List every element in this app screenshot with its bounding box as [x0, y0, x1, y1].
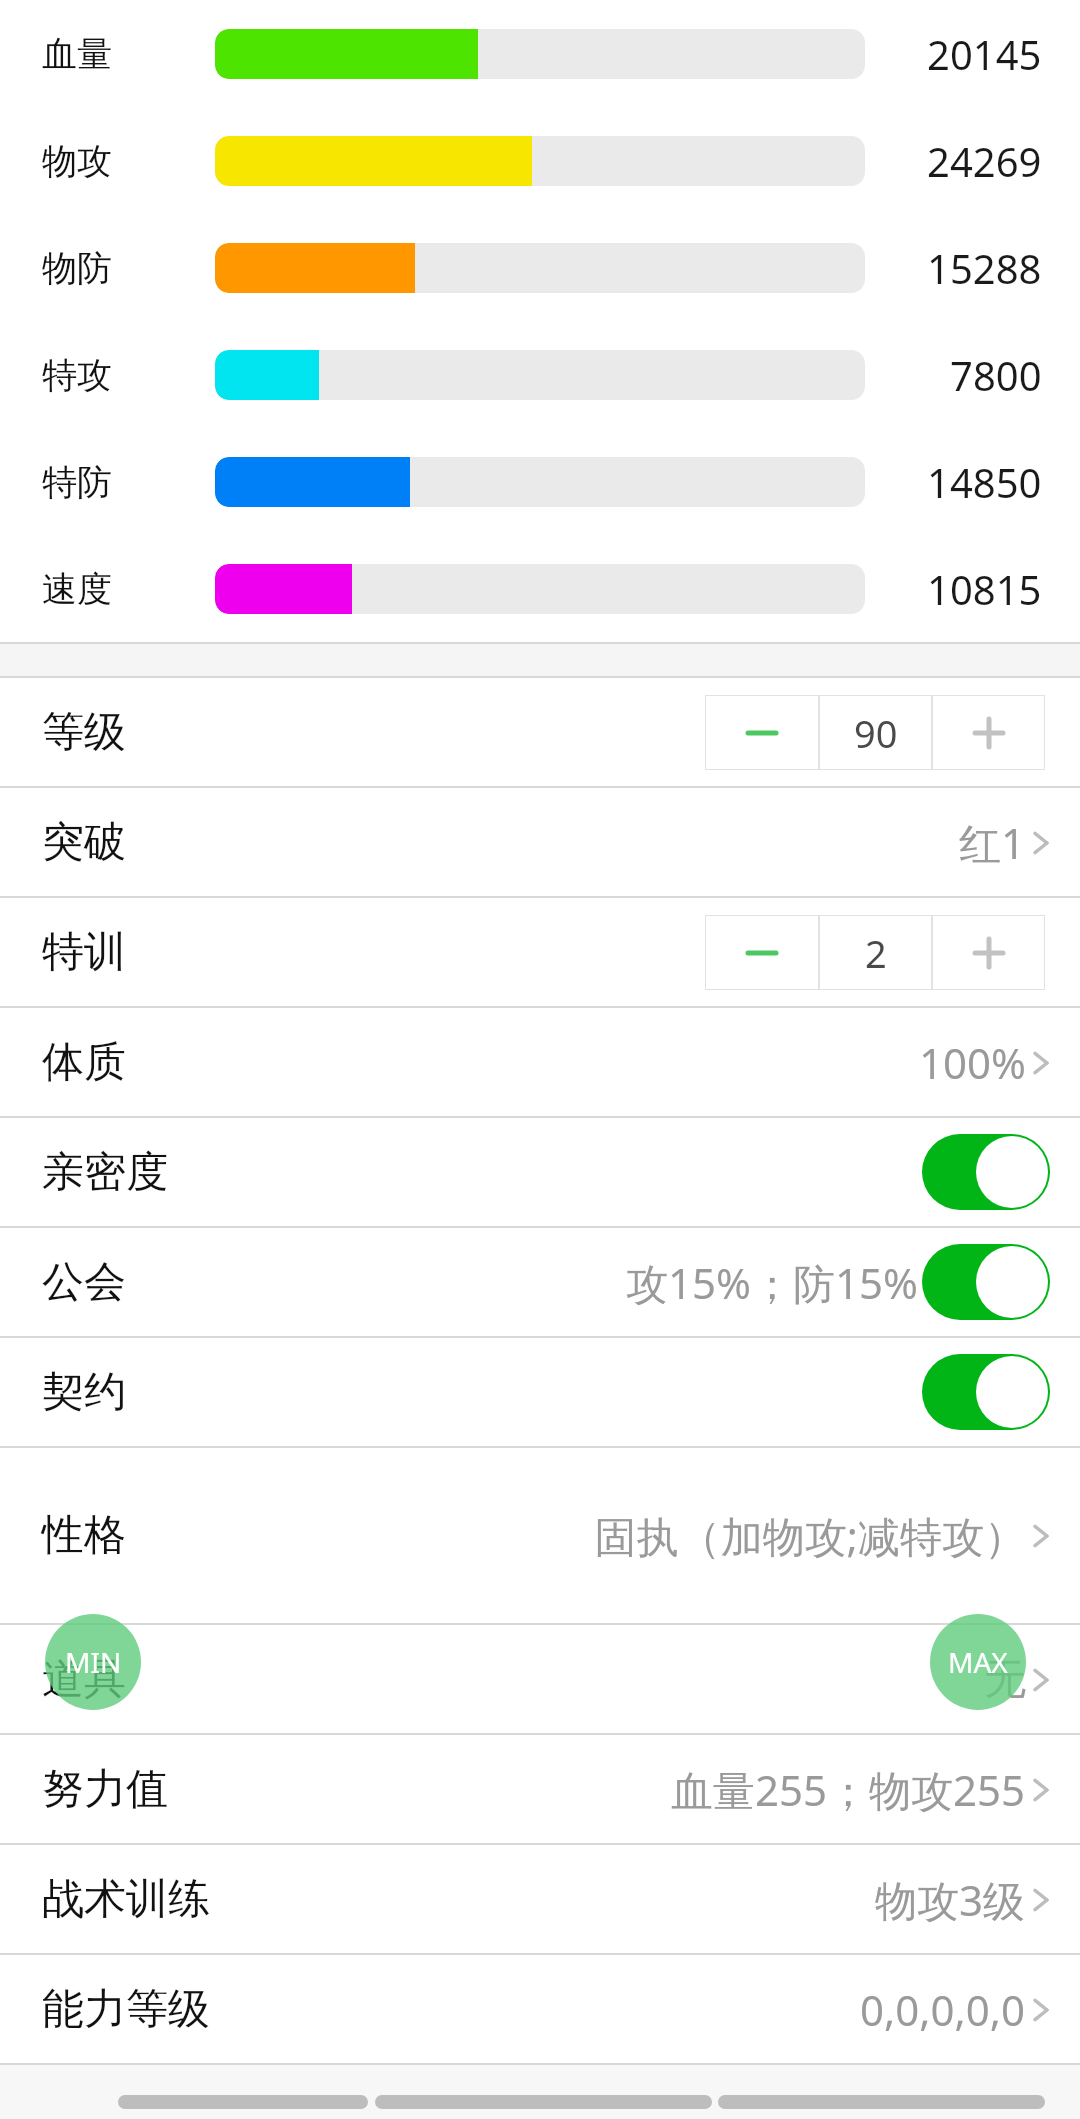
other: Increase	[969, 713, 1009, 753]
staticText: 无	[984, 1653, 1026, 1706]
button[interactable]: 等级	[0, 678, 1080, 786]
staticText: 20145	[927, 27, 1042, 81]
staticText: 特训	[42, 926, 126, 979]
other: Increase	[969, 933, 1009, 973]
button[interactable]: Toggle on	[922, 1354, 1050, 1430]
staticText: 等级	[42, 706, 126, 759]
staticText: MAX	[948, 1643, 1008, 1681]
staticText: 性格	[42, 1509, 126, 1562]
button[interactable]: 突破	[0, 788, 1080, 896]
staticText: 契约	[42, 1366, 126, 1419]
button[interactable]: Decrease	[706, 696, 818, 769]
button[interactable]: Tab 3	[718, 2095, 1045, 2109]
button[interactable]: 体质	[0, 1008, 1080, 1116]
staticText: 特防	[42, 460, 112, 504]
button[interactable]: 公会	[0, 1228, 1080, 1336]
staticText: 公会	[42, 1256, 126, 1309]
staticText: 100%	[919, 1034, 1026, 1091]
staticText: 体质	[42, 1036, 126, 1089]
staticText: 2	[865, 927, 887, 979]
staticText: 15288	[927, 241, 1042, 295]
other: Decrease	[742, 723, 782, 743]
button[interactable]: 努力值	[0, 1735, 1080, 1843]
other: Decrease	[742, 943, 782, 963]
staticText: 0,0,0,0,0	[860, 1981, 1026, 2038]
button[interactable]: Toggle on	[922, 1134, 1050, 1210]
staticText: 24269	[927, 134, 1042, 188]
button[interactable]: 道具	[0, 1625, 1080, 1733]
staticText: 固执（加物攻;减特攻）	[586, 1507, 1026, 1564]
staticText: 努力值	[42, 1763, 168, 1816]
staticText: MIN	[65, 1643, 122, 1681]
staticText: 特攻	[42, 353, 112, 397]
button[interactable]: 能力等级	[0, 1955, 1080, 2063]
staticText: 亲密度	[42, 1146, 168, 1199]
staticText: 90	[854, 707, 898, 759]
button[interactable]: Increase	[933, 696, 1044, 769]
button[interactable]: 特训	[0, 898, 1080, 1006]
button[interactable]: Tab 2	[375, 2095, 712, 2109]
button[interactable]: Decrease	[706, 916, 818, 989]
button[interactable]: Tab 1	[118, 2095, 368, 2109]
button[interactable]: MAX	[930, 1614, 1026, 1710]
staticText: 血量255；物攻255	[671, 1761, 1026, 1818]
button[interactable]: 亲密度	[0, 1118, 1080, 1226]
staticText: 血量	[42, 32, 112, 76]
button[interactable]: MIN	[45, 1614, 141, 1710]
staticText: 物攻3级	[875, 1871, 1026, 1928]
staticText: 战术训练	[42, 1873, 210, 1926]
button[interactable]: Increase	[933, 916, 1044, 989]
staticText: 突破	[42, 816, 126, 869]
staticText: 物防	[42, 246, 112, 290]
staticText: 14850	[927, 455, 1042, 509]
button[interactable]: 战术训练	[0, 1845, 1080, 1953]
staticText: 道具	[42, 1653, 126, 1706]
button[interactable]: Toggle on	[922, 1244, 1050, 1320]
staticText: 10815	[927, 562, 1042, 616]
staticText: 7800	[950, 348, 1042, 402]
staticText: 攻15%；防15%	[626, 1254, 918, 1311]
button[interactable]: 性格	[0, 1448, 1080, 1623]
staticText: 红1	[959, 814, 1026, 871]
staticText: 物攻	[42, 139, 112, 183]
button[interactable]: 契约	[0, 1338, 1080, 1446]
staticText: 速度	[42, 567, 112, 611]
staticText: 能力等级	[42, 1983, 210, 2036]
